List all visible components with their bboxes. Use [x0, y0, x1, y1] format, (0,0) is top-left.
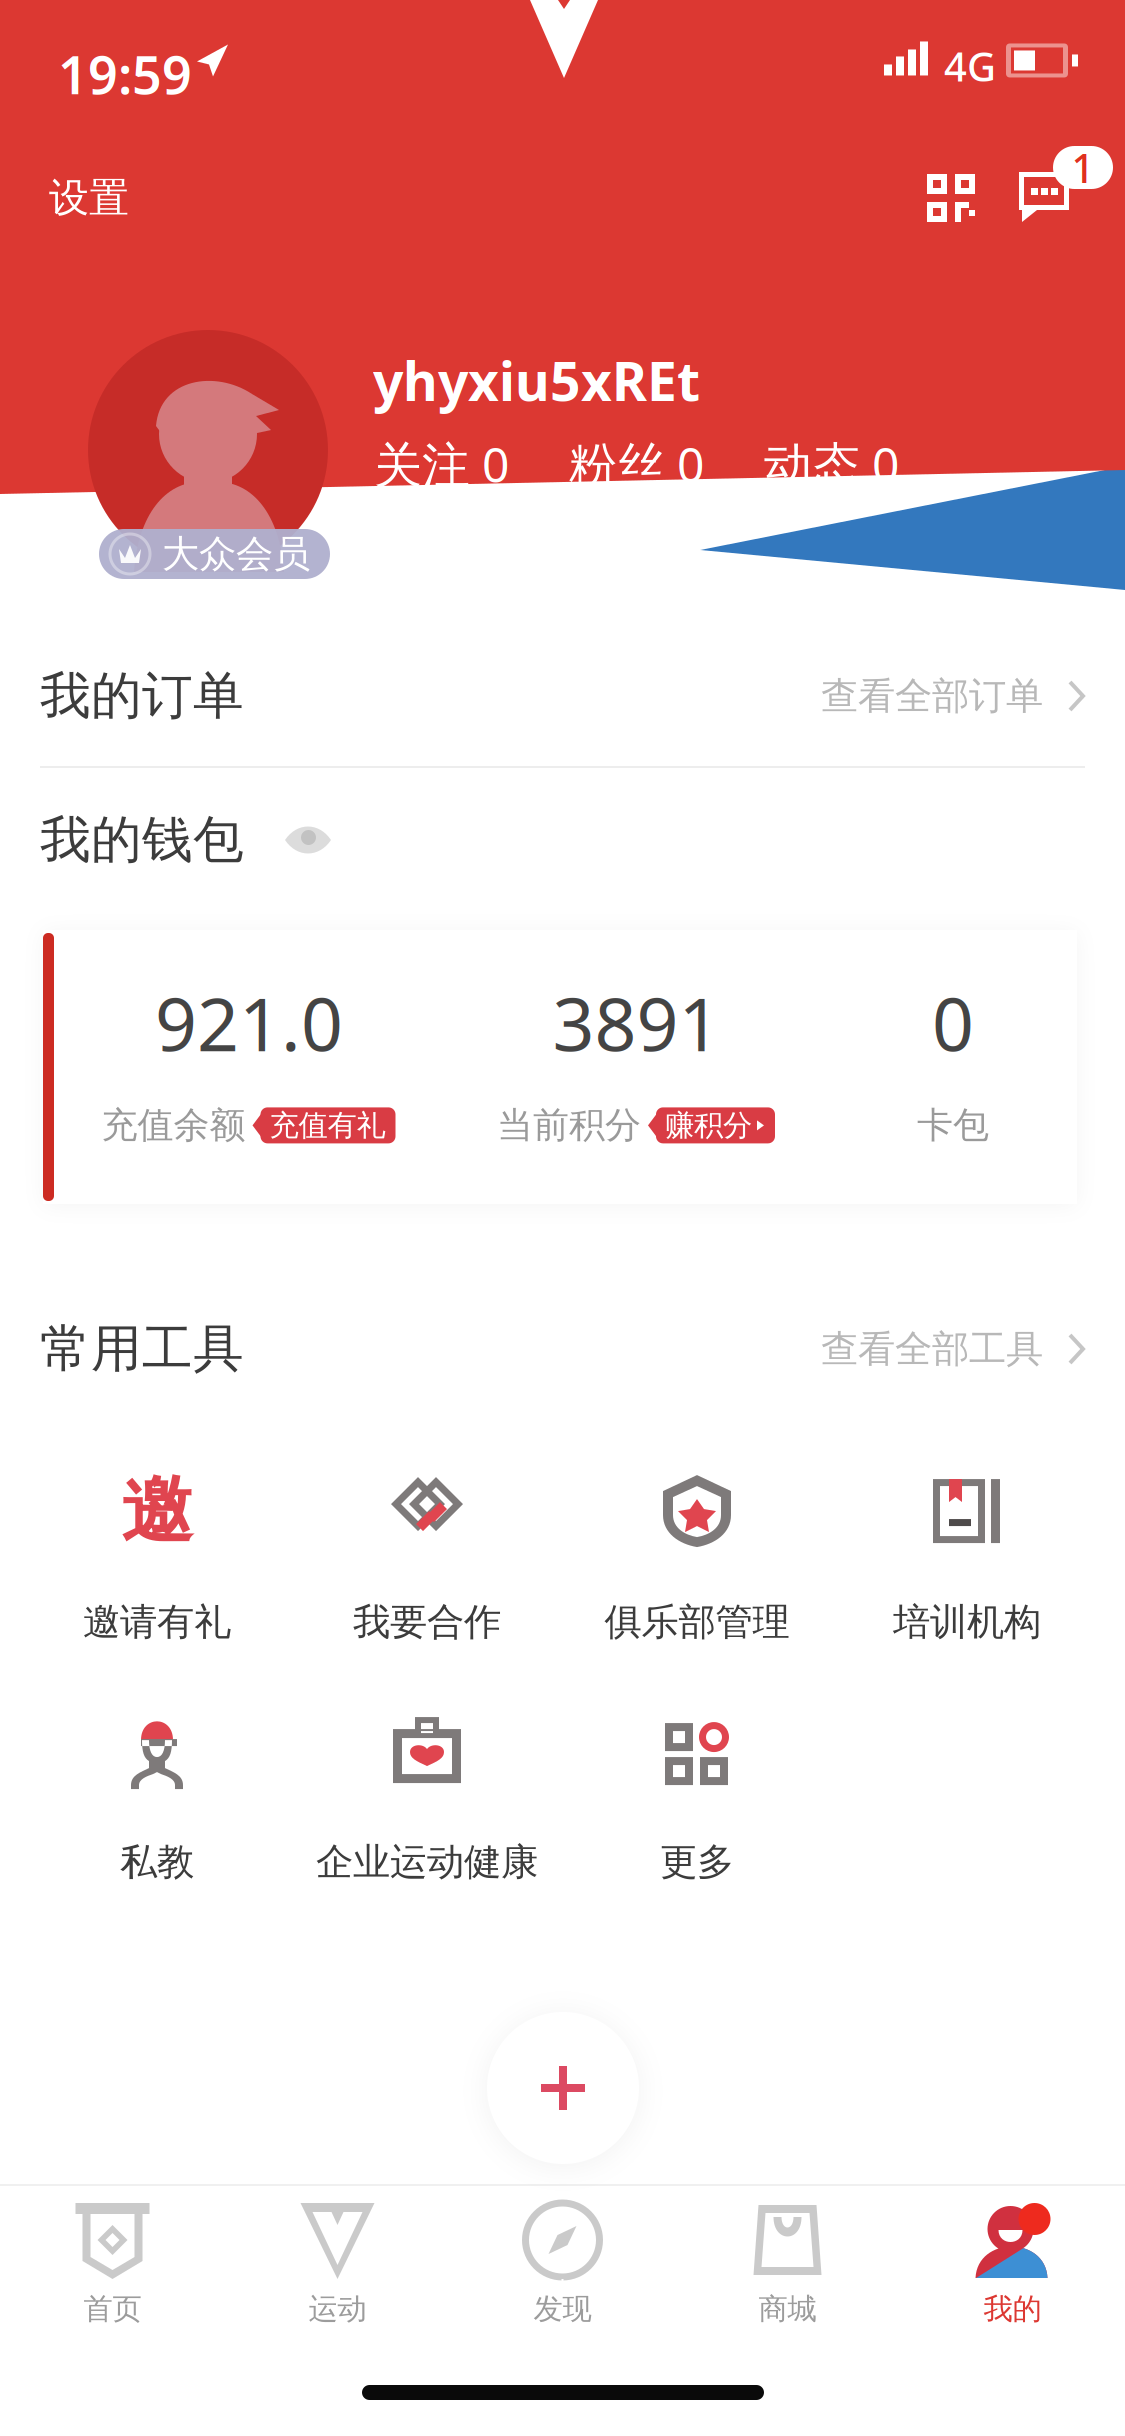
button[interactable]: 消息: [995, 148, 1093, 246]
button[interactable]: 企业运动健康: [292, 1714, 562, 1884]
staticText: yhyxiu5xREt: [373, 345, 700, 416]
staticText: 常用工具: [40, 1318, 244, 1380]
staticText: 粉丝 0: [569, 432, 704, 496]
staticText: 赚积分: [665, 1107, 752, 1143]
button[interactable]: 邀: [22, 1474, 292, 1644]
staticText: 更多: [660, 1839, 734, 1885]
button[interactable]: 发现: [450, 2203, 675, 2343]
button[interactable]: 更多: [562, 1714, 832, 1884]
staticText: 邀: [121, 1467, 193, 1555]
button[interactable]: 培训机构: [832, 1474, 1102, 1644]
button[interactable]: 我要合作: [292, 1474, 562, 1644]
staticText: 培训机构: [893, 1599, 1041, 1645]
staticText: 设置: [49, 173, 129, 222]
staticText: 19:59: [58, 39, 192, 109]
staticText: 私教: [120, 1839, 194, 1885]
staticText: 当前积分: [497, 1103, 641, 1147]
button[interactable]: 商城: [675, 2203, 900, 2343]
staticText: 我的: [983, 2291, 1041, 2327]
button[interactable]: 常用工具: [0, 1281, 1125, 1417]
button[interactable]: 俱乐部管理: [562, 1474, 832, 1644]
button[interactable]: 动态 0: [764, 432, 899, 496]
staticText: 查看全部工具: [821, 1326, 1043, 1372]
staticText: 1: [1071, 141, 1094, 194]
staticText: 俱乐部管理: [604, 1599, 789, 1645]
staticText: 我的订单: [40, 665, 244, 727]
staticText: 我要合作: [353, 1599, 501, 1645]
button[interactable]: 运动: [225, 2203, 450, 2343]
staticText: 企业运动健康: [316, 1839, 538, 1885]
staticText: 3891: [552, 974, 720, 1071]
button[interactable]: 我的订单: [0, 628, 1125, 764]
button[interactable]: 我的: [900, 2203, 1125, 2343]
staticText: 充值有礼: [269, 1107, 385, 1143]
staticText: 首页: [83, 2291, 141, 2327]
staticText: 动态 0: [764, 432, 899, 496]
staticText: 发现: [533, 2291, 591, 2327]
staticText: 商城: [758, 2291, 816, 2327]
button[interactable]: 关注 0: [374, 432, 569, 496]
staticText: 卡包: [917, 1103, 989, 1147]
button[interactable]: 私教: [22, 1714, 292, 1884]
button[interactable]: 我的钱包: [0, 775, 1125, 905]
staticText: 大众会员: [162, 531, 310, 577]
staticText: 运动: [308, 2291, 366, 2327]
staticText: 邀请有礼: [83, 1599, 231, 1645]
button[interactable]: 粉丝 0: [569, 432, 764, 496]
staticText: 关注 0: [374, 432, 509, 496]
staticText: 充值余额: [101, 1103, 245, 1147]
button[interactable]: 扫一扫: [903, 150, 999, 246]
staticText: 921.0: [155, 974, 343, 1071]
staticText: 查看全部订单: [821, 673, 1043, 719]
staticText: 我的钱包: [40, 809, 244, 871]
button[interactable]: 首页: [0, 2203, 225, 2343]
staticText: 0: [932, 974, 974, 1071]
button[interactable]: 添加: [487, 2012, 639, 2164]
button[interactable]: 设置: [22, 148, 156, 248]
staticText: 4G: [944, 39, 996, 93]
